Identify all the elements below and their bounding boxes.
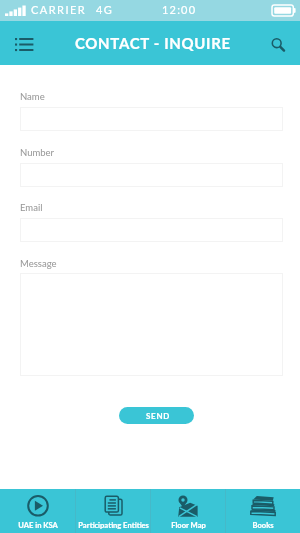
button[interactable]: UAE in KSA bbox=[0, 489, 75, 533]
staticText: Message bbox=[20, 258, 57, 269]
staticText: Participating Entities bbox=[78, 520, 149, 529]
button[interactable] bbox=[20, 163, 283, 187]
staticText: SEND bbox=[146, 411, 171, 421]
staticText: CONTACT - INQUIRE bbox=[75, 34, 231, 52]
staticText: 4G bbox=[96, 3, 114, 16]
button[interactable]: Books bbox=[226, 489, 300, 533]
button[interactable]: Participating Entities bbox=[76, 489, 150, 533]
button[interactable] bbox=[20, 218, 283, 242]
button[interactable]: SEND bbox=[119, 407, 194, 424]
staticText: Floor Map bbox=[171, 520, 206, 529]
staticText: Number bbox=[20, 147, 55, 158]
button[interactable]: Floor Map bbox=[151, 489, 225, 533]
staticText: Name bbox=[20, 91, 45, 102]
staticText: UAE in KSA bbox=[18, 520, 58, 529]
staticText: CARRIER bbox=[31, 3, 87, 16]
button[interactable]: Search bbox=[262, 27, 298, 59]
button[interactable] bbox=[20, 107, 283, 131]
staticText: 12:00 bbox=[162, 3, 197, 16]
button[interactable]: Menu bbox=[5, 27, 43, 59]
staticText: Books bbox=[252, 520, 274, 529]
staticText: Email bbox=[20, 202, 43, 213]
